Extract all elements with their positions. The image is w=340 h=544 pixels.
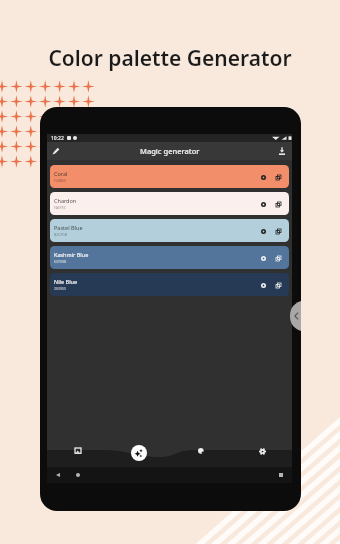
staticText: Kashmir Blue bbox=[54, 251, 89, 258]
staticText: FAEFEC bbox=[54, 205, 66, 210]
button[interactable]: Magic wand bbox=[49, 144, 63, 158]
button[interactable]: Copy hex bbox=[272, 198, 284, 210]
button[interactable]: Copy hex bbox=[272, 279, 284, 291]
button[interactable]: Generate palette bbox=[131, 445, 147, 461]
button[interactable]: Download palette bbox=[275, 144, 289, 158]
button[interactable]: Lock color bbox=[257, 198, 269, 210]
button[interactable]: Lock color bbox=[257, 279, 269, 291]
button[interactable]: Coral bbox=[50, 165, 289, 188]
button[interactable]: Lock color bbox=[257, 171, 269, 183]
staticText: Coral bbox=[54, 170, 68, 177]
button[interactable]: Chardon bbox=[50, 192, 289, 215]
button[interactable]: Copy hex bbox=[272, 225, 284, 237]
staticText: Nile Blue bbox=[54, 278, 78, 285]
staticText: Magic generator bbox=[140, 146, 200, 156]
button[interactable]: Gallery bbox=[71, 444, 85, 458]
button[interactable]: Copy hex bbox=[272, 171, 284, 183]
button[interactable]: Home bbox=[73, 470, 83, 480]
button[interactable]: Copy hex bbox=[272, 252, 284, 264]
button[interactable]: Kashmir Blue bbox=[50, 246, 289, 269]
button[interactable]: Lock color bbox=[257, 252, 269, 264]
button[interactable]: Palette bbox=[194, 444, 208, 458]
button[interactable]: Lock color bbox=[257, 225, 269, 237]
staticText: 10:22 bbox=[51, 135, 64, 142]
staticText: Color palette Generator bbox=[0, 44, 340, 73]
button[interactable]: Pastel Blue bbox=[50, 219, 289, 242]
button[interactable]: Settings bbox=[255, 444, 269, 458]
staticText: F28B66 bbox=[54, 178, 67, 183]
button[interactable]: Nile Blue bbox=[50, 273, 289, 296]
staticText: 263955 bbox=[54, 286, 67, 291]
button[interactable]: Recents bbox=[276, 470, 286, 480]
staticText: B2CFDB bbox=[54, 232, 68, 237]
staticText: 53759B bbox=[54, 259, 67, 264]
staticText: Chardon bbox=[54, 197, 77, 204]
button[interactable]: Back bbox=[53, 470, 63, 480]
staticText: Pastel Blue bbox=[54, 224, 83, 231]
